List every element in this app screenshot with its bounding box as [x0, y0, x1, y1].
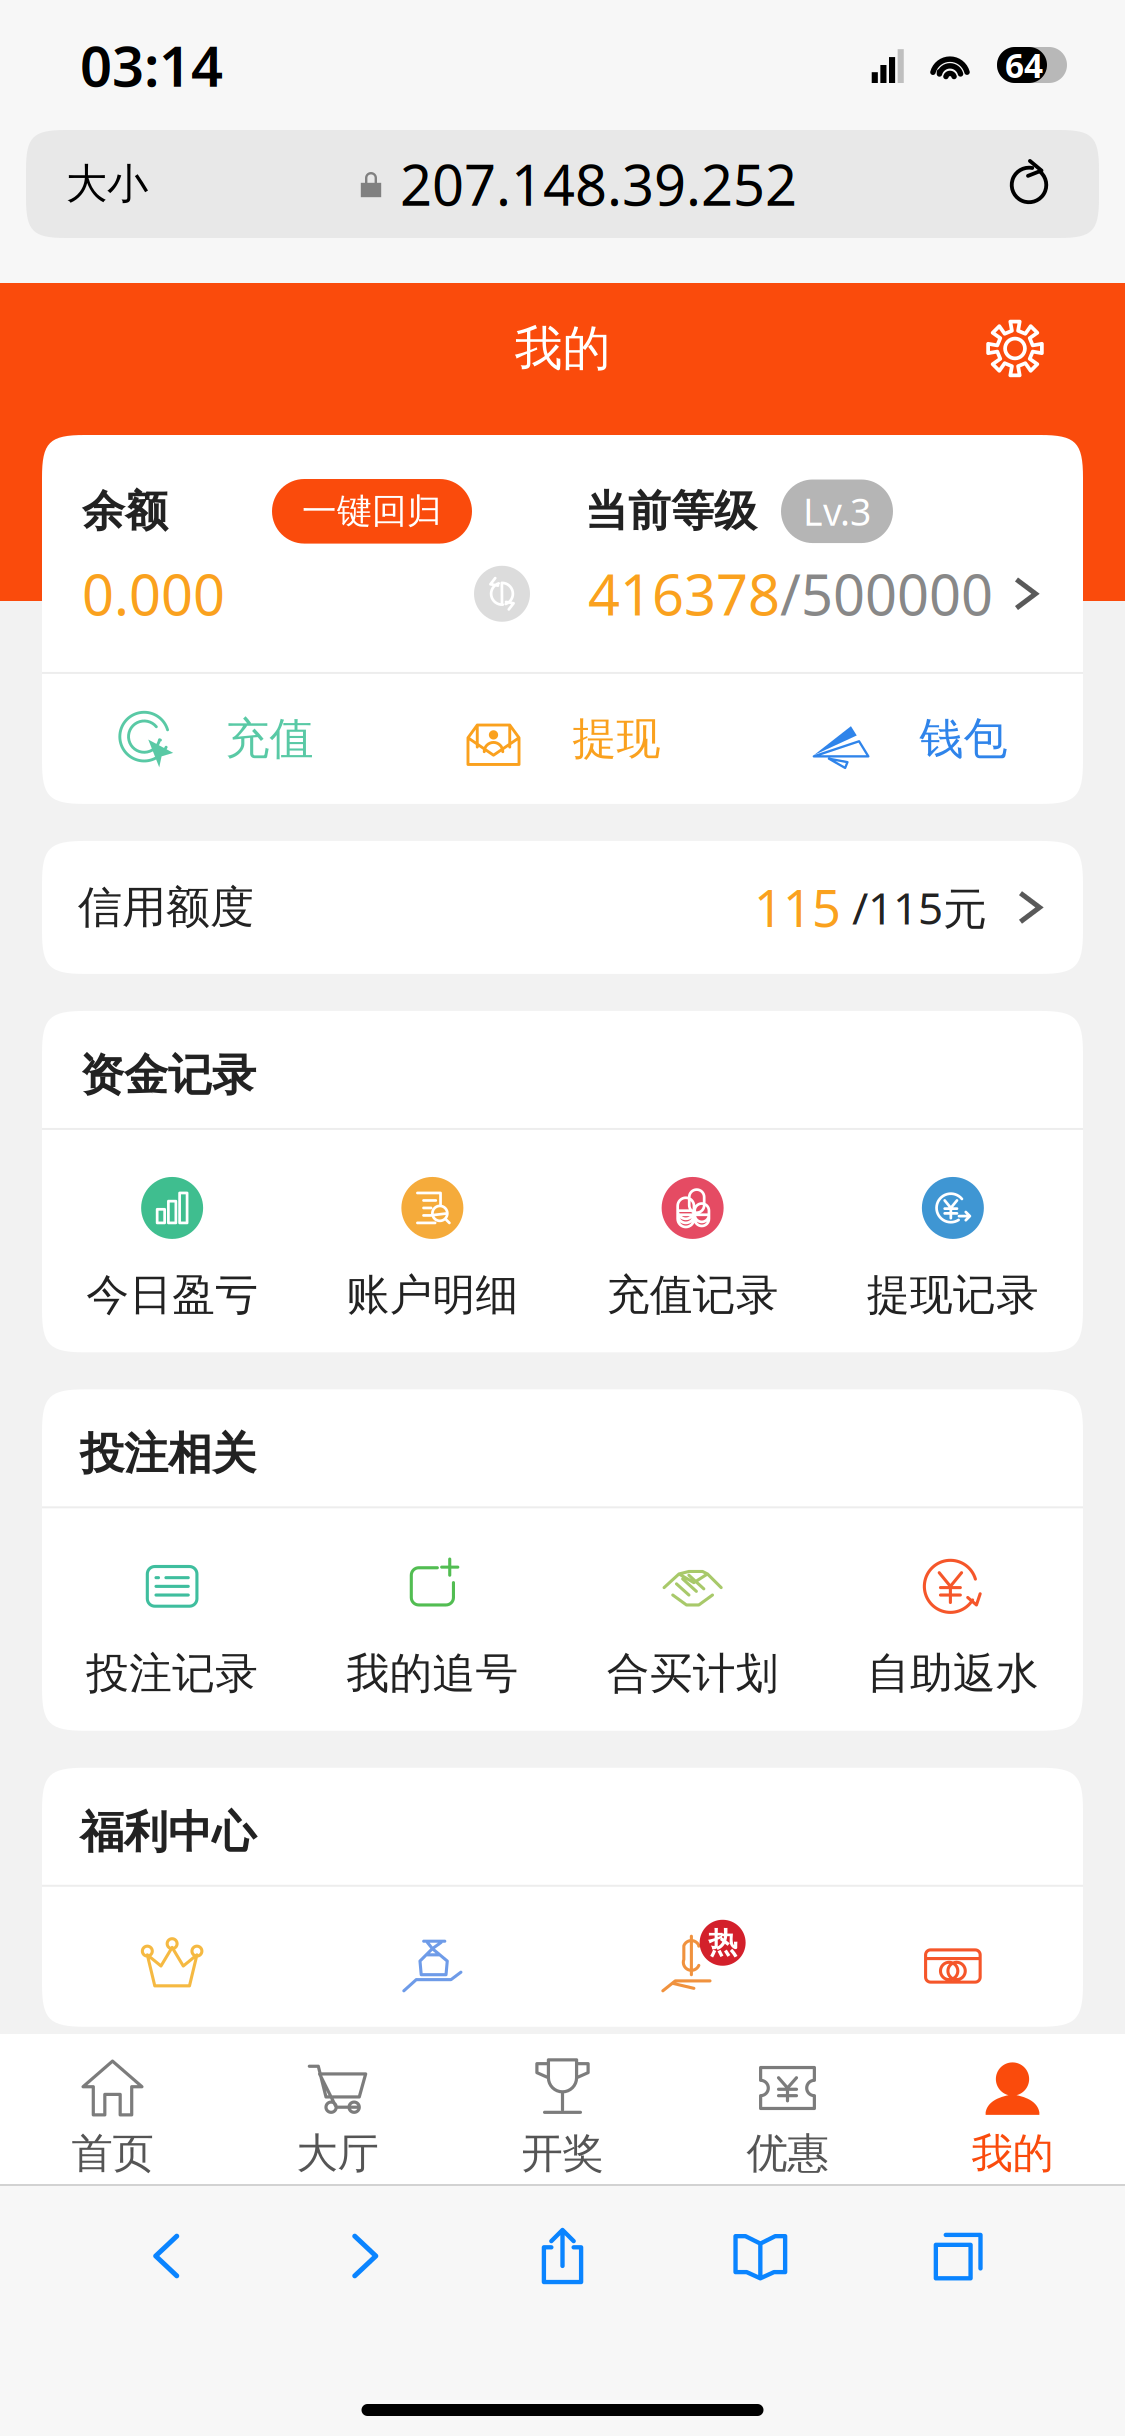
button[interactable]: [823, 1934, 1083, 1996]
staticText: 我的: [971, 2128, 1053, 2179]
button[interactable]: Page settings: [26, 141, 148, 227]
staticText: 充值: [225, 712, 313, 766]
button[interactable]: 提现记录: [823, 1177, 1083, 1321]
button[interactable]: 投注记录: [42, 1555, 302, 1700]
staticText: 账户明细: [346, 1269, 518, 1321]
staticText: 416378: [588, 557, 780, 631]
staticText: 余额: [82, 485, 168, 537]
staticText: 合买计划: [607, 1647, 779, 1700]
staticText: 当前等级: [585, 485, 757, 537]
button[interactable]: 416378: [588, 557, 1043, 631]
staticText: /500000: [780, 557, 993, 631]
button[interactable]: 提现: [389, 700, 736, 778]
staticText: 一键回归: [302, 490, 442, 533]
staticText: 03:14: [80, 28, 223, 102]
staticText: 福利中心: [80, 1805, 256, 1859]
staticText: 64: [1005, 43, 1043, 87]
staticText: 充值记录: [607, 1269, 779, 1321]
staticText: Lv.3: [803, 486, 871, 536]
button[interactable]: 充值: [42, 700, 389, 778]
staticText: 自助返水: [867, 1647, 1039, 1700]
button[interactable]: 合买计划: [562, 1555, 823, 1700]
staticText: 115: [754, 874, 841, 941]
staticText: 207.148.39.252: [400, 147, 797, 221]
button[interactable]: Share: [531, 2225, 593, 2287]
staticText: 我的: [514, 319, 610, 378]
staticText: 钱包: [919, 712, 1007, 766]
staticText: 投注相关: [80, 1427, 256, 1481]
button[interactable]: Tabs: [927, 2225, 989, 2287]
staticText: 提现: [572, 712, 660, 766]
button[interactable]: Bookmarks: [729, 2225, 791, 2287]
button[interactable]: 账户明细: [302, 1177, 562, 1321]
staticText: 开奖: [521, 2128, 603, 2179]
button[interactable]: Reload: [1005, 160, 1099, 208]
button[interactable]: 今日盈亏: [42, 1177, 302, 1321]
staticText: 大厅: [296, 2128, 378, 2179]
staticText: 我的追号: [346, 1647, 518, 1700]
staticText: 热: [708, 1925, 737, 1961]
button[interactable]: 首页: [0, 2056, 225, 2179]
staticText: 提现记录: [867, 1269, 1039, 1321]
button[interactable]: 信用额度: [42, 841, 1083, 974]
button[interactable]: 优惠: [675, 2056, 900, 2179]
staticText: 0.000: [82, 557, 225, 631]
button[interactable]: [302, 1934, 562, 1996]
staticText: 优惠: [746, 2128, 828, 2179]
button[interactable]: [42, 1934, 302, 1996]
button[interactable]: 大厅: [225, 2056, 450, 2179]
button[interactable]: 开奖: [450, 2056, 675, 2179]
button[interactable]: Back: [136, 2225, 198, 2287]
staticText: 投注记录: [86, 1647, 258, 1700]
staticText: 大小: [66, 159, 148, 209]
button[interactable]: 热: [562, 1934, 823, 1996]
button[interactable]: 充值记录: [562, 1177, 823, 1321]
button[interactable]: 钱包: [736, 700, 1083, 778]
button[interactable]: 我的追号: [302, 1555, 562, 1700]
staticText: 信用额度: [78, 880, 254, 934]
staticText: 今日盈亏: [86, 1269, 258, 1321]
button[interactable]: 我的: [900, 2056, 1125, 2179]
button[interactable]: Settings: [984, 317, 1046, 379]
button[interactable]: 一键回归: [272, 479, 472, 544]
staticText: 资金记录: [80, 1048, 256, 1102]
button[interactable]: Forward: [334, 2225, 396, 2287]
staticText: 首页: [71, 2128, 153, 2179]
staticText: /115元: [841, 878, 987, 937]
button[interactable]: 自助返水: [823, 1555, 1083, 1700]
